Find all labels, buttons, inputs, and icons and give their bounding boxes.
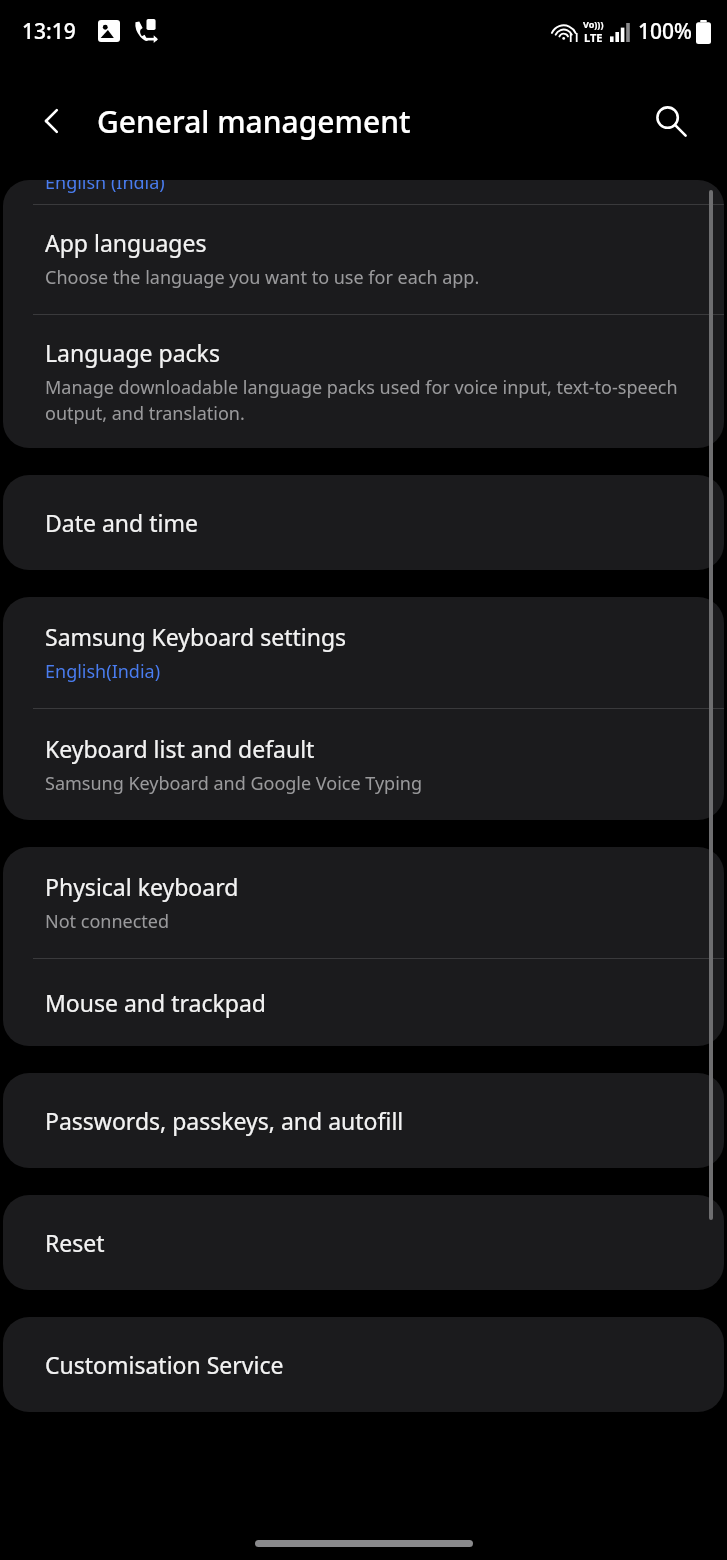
staticText: Not connected [45,909,170,934]
staticText: English (India) [45,180,165,194]
staticText: Vo))) [583,18,604,30]
button[interactable]: Date and time [3,475,724,570]
staticText: 13:19 [22,17,76,46]
staticText: 100% [638,17,692,46]
staticText: Customisation Service [45,1349,284,1380]
button[interactable]: English (India) [3,180,724,204]
staticText: LTE [584,30,603,45]
staticText: Keyboard list and default [45,733,315,764]
staticText: Passwords, passkeys, and autofill [45,1105,404,1136]
staticText: Language packs [45,337,220,368]
button[interactable]: Search [645,95,697,147]
button[interactable]: Passwords, passkeys, and autofill [3,1073,724,1168]
staticText: Manage downloadable language packs used … [45,375,694,426]
staticText: Mouse and trackpad [45,987,266,1018]
button[interactable]: Keyboard list and default [3,709,724,820]
button[interactable]: App languages [3,205,724,314]
button[interactable]: Customisation Service [3,1317,724,1412]
staticText: English(India) [45,659,161,684]
button[interactable]: Mouse and trackpad [3,959,724,1046]
staticText: Samsung Keyboard settings [45,621,347,652]
staticText: General management [97,101,411,142]
staticText: Physical keyboard [45,871,239,902]
staticText: App languages [45,227,207,258]
button[interactable]: Language packs [3,315,724,448]
staticText: Samsung Keyboard and Google Voice Typing [45,771,423,796]
button[interactable]: Samsung Keyboard settings [3,597,724,708]
button[interactable]: Reset [3,1195,724,1290]
staticText: Choose the language you want to use for … [45,265,480,290]
button[interactable]: Back [26,95,78,147]
staticText: Reset [45,1227,105,1258]
button[interactable]: Physical keyboard [3,847,724,958]
staticText: Date and time [45,507,198,538]
